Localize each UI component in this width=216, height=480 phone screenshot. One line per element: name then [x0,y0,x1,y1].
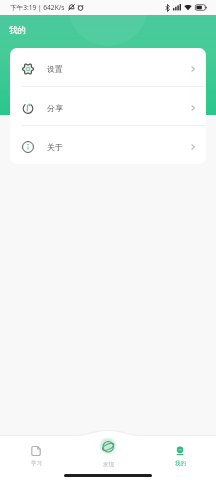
button[interactable]: 学习 [0,435,72,480]
staticText: 分享 [47,103,63,113]
other: 发现 [102,440,115,453]
other: 我的 [175,446,185,456]
staticText: 发现 [103,461,114,468]
button[interactable]: 设置 [10,48,206,86]
button[interactable]: 关于 [10,126,206,164]
button[interactable]: 我的 [144,435,216,480]
staticText: 我的 [9,25,26,36]
staticText: 设置 [47,64,63,74]
button[interactable]: 发现 [72,435,144,480]
staticText: 学习 [31,460,42,467]
other: 学习 [31,446,41,456]
button[interactable]: 分享 [10,87,206,125]
staticText: 我的 [175,460,186,467]
staticText: 关于 [47,142,63,152]
staticText: 下午3:19 | 642K/s [10,3,65,12]
